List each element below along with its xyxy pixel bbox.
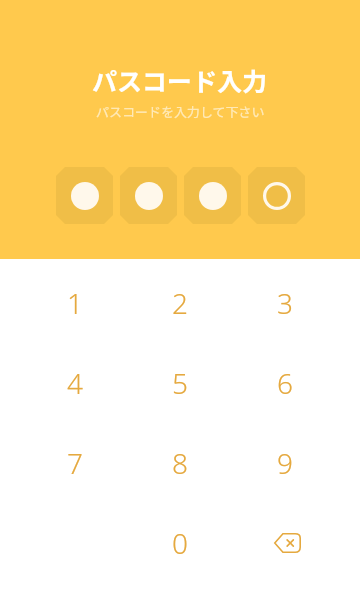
button[interactable]: 4 (23, 343, 127, 423)
button[interactable]: 2 (127, 263, 232, 343)
button[interactable]: 9 (232, 423, 337, 503)
button[interactable]: 5 (127, 343, 232, 423)
button[interactable]: 1 (23, 263, 127, 343)
staticText: 6 (277, 364, 293, 402)
button[interactable]: 3 (232, 263, 337, 343)
staticText: 0 (172, 524, 188, 562)
staticText: 3 (277, 284, 293, 322)
button[interactable]: 7 (23, 423, 127, 503)
staticText: パスコードを入力して下さい (96, 102, 265, 121)
button[interactable]: 0 (127, 503, 232, 583)
staticText: 9 (277, 444, 293, 482)
staticText: 1 (67, 284, 83, 322)
staticText: 2 (172, 284, 188, 322)
button[interactable]: Delete (232, 503, 337, 583)
staticText: パスコード入力 (92, 62, 268, 98)
staticText: 7 (67, 444, 83, 482)
button[interactable]: 8 (127, 423, 232, 503)
staticText: 5 (172, 364, 188, 402)
staticText: 8 (172, 444, 188, 482)
staticText: 4 (67, 364, 83, 402)
button[interactable]: 6 (232, 343, 337, 423)
